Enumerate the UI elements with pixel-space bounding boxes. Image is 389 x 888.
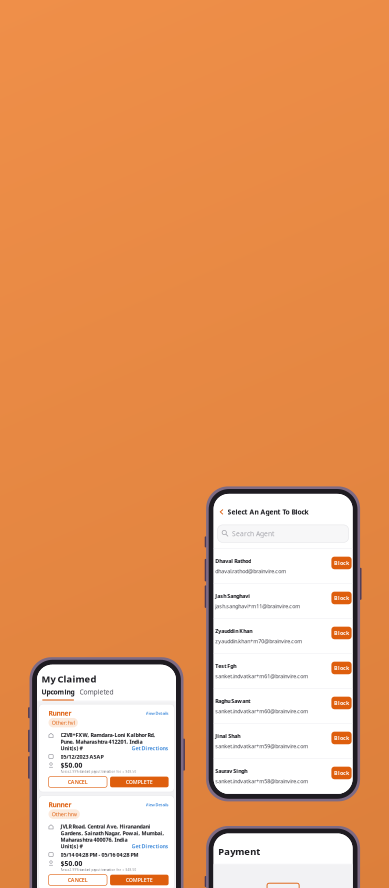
- staticText: CANCEL: [68, 778, 88, 785]
- staticText: View Details: [146, 802, 169, 807]
- staticText: Search Agent: [232, 529, 274, 538]
- staticText: Block: [334, 769, 349, 776]
- staticText: Pune, Maharashtra 412201, India: [60, 738, 142, 745]
- staticText: Get Directions: [132, 745, 169, 752]
- staticText: Dhaval Rathod: [215, 557, 251, 564]
- staticText: Raghu Sawant: [215, 697, 250, 704]
- staticText: $50.00: [60, 761, 82, 770]
- staticText: Upcoming: [42, 688, 75, 696]
- button[interactable]: CANCEL: [48, 875, 107, 885]
- staticText: Zyauddin Khan: [215, 627, 252, 634]
- staticText: Block: [334, 559, 349, 566]
- staticText: Select An Agent To Block: [228, 507, 309, 516]
- button[interactable]: Test Fgh: [214, 654, 353, 688]
- staticText: Saurav Singh: [215, 767, 247, 774]
- staticText: COMPLETE: [126, 876, 153, 884]
- staticText: Get Directions: [132, 843, 169, 850]
- staticText: sanket.indvatkar+m58@brainvire.com: [215, 778, 308, 785]
- staticText: sanket.indvatkar+m60@brainvire.com: [215, 708, 308, 715]
- staticText: 05/14 04:28 PM - 05/16 04:28 PM: [60, 851, 138, 858]
- button[interactable]: Nilesh More: [214, 794, 353, 828]
- staticText: Runner: [48, 800, 71, 809]
- button[interactable]: Saurav Singh: [214, 759, 353, 793]
- staticText: dhaval.rathod@brainvire.com: [215, 567, 286, 575]
- button[interactable]: Jash Sanghavi: [214, 584, 353, 618]
- staticText: Block: [334, 734, 349, 741]
- button[interactable]: Raghu Sawant: [214, 689, 353, 723]
- button[interactable]: View Details: [146, 802, 169, 807]
- staticText: Payment: [218, 845, 260, 858]
- staticText: My Claimed: [42, 673, 97, 685]
- staticText: Jash Sanghavi: [215, 592, 250, 599]
- button[interactable]: COMPLETE: [110, 875, 169, 885]
- staticText: View Details: [146, 710, 169, 716]
- staticText: Unit(s) #: [60, 745, 82, 752]
- staticText: sanket.indvatkar+m61@brainvire.com: [215, 673, 308, 680]
- staticText: sanket.indvatkar+m59@brainvire.com: [215, 743, 308, 750]
- staticText: JVLR Road, Central Ave, Hiranandani: [60, 823, 150, 830]
- staticText: $50.00: [60, 859, 82, 868]
- staticText: zyauddin.khan+m70@brainvire.com: [215, 637, 302, 645]
- staticText: *Less a 2.99% standard payout transactio…: [60, 770, 136, 774]
- button[interactable]: Back: [216, 502, 228, 522]
- staticText: *Less a 2.99% standard payout transactio…: [60, 868, 136, 872]
- button[interactable]: Jinal Shah: [214, 724, 353, 758]
- staticText: C2V8+FXW, Ramdara-Loni Kalbhor Rd,: [60, 731, 155, 739]
- staticText: Jinal Shah: [215, 732, 240, 739]
- staticText: CANCEL: [68, 876, 88, 884]
- staticText: Completed: [80, 688, 114, 696]
- button[interactable]: COMPLETE: [110, 777, 169, 787]
- staticText: jash.sanghavi+m11@brainvire.com: [215, 602, 300, 610]
- staticText: Gardens, Sainath Nagar, Powai, Mumbai,: [60, 829, 164, 837]
- staticText: Block: [334, 664, 349, 671]
- staticText: Maharashtra 400076, India: [60, 836, 127, 843]
- button[interactable]: Zyauddin Khan: [214, 619, 353, 653]
- staticText: Other: hvl: [52, 719, 75, 726]
- staticText: Block: [334, 629, 349, 636]
- button[interactable]: Add New Card: [267, 883, 299, 888]
- button[interactable]: Get Directions: [132, 843, 169, 850]
- staticText: Other: hrw: [52, 811, 77, 818]
- staticText: 05/12/2023 ASAP: [60, 753, 103, 760]
- staticText: Test Fgh: [215, 662, 236, 669]
- staticText: Runner: [48, 709, 71, 718]
- button[interactable]: Dhaval Rathod: [214, 549, 353, 583]
- staticText: Unit(s) #: [60, 843, 82, 850]
- staticText: COMPLETE: [126, 778, 153, 785]
- button[interactable]: Completed: [75, 688, 114, 701]
- button[interactable]: Upcoming: [42, 688, 75, 701]
- button[interactable]: View Details: [146, 710, 169, 716]
- button[interactable]: Get Directions: [132, 745, 169, 752]
- staticText: Block: [334, 699, 349, 706]
- button[interactable]: CANCEL: [48, 777, 107, 787]
- staticText: Block: [334, 594, 349, 601]
